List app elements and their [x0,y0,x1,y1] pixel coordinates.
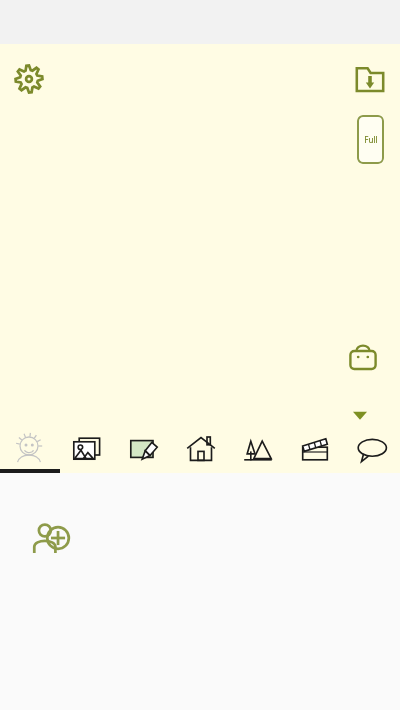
button[interactable]: Chat [343,425,400,473]
button[interactable]: Gallery [58,425,115,473]
button[interactable]: Settings [8,58,50,100]
button[interactable]: Draw [115,425,172,473]
staticText: Full [364,134,378,145]
button[interactable]: Home [172,425,229,473]
button[interactable]: Download to folder [348,57,392,101]
button[interactable]: Profile [0,425,58,473]
button[interactable]: Full [357,115,384,164]
button[interactable]: Nature [229,425,286,473]
button[interactable]: Add friend [26,513,76,563]
button[interactable]: Expand [346,401,374,429]
button[interactable]: Shop [341,335,385,379]
button[interactable]: Video [286,425,343,473]
